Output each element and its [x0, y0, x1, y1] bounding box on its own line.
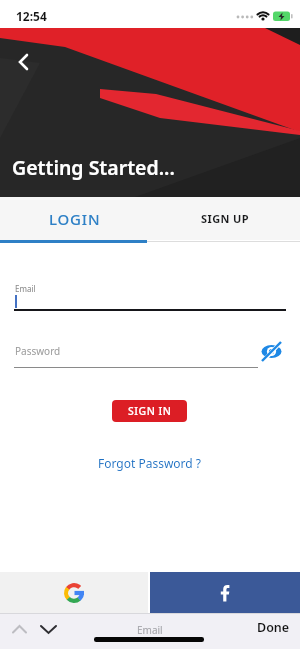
- staticText: SIGN UP: [201, 211, 250, 226]
- staticText: Getting Started...: [12, 154, 175, 181]
- staticText: 12:54: [16, 8, 47, 24]
- button[interactable]: SIGN IN: [112, 400, 187, 422]
- staticText: Forgot Password ?: [98, 455, 202, 471]
- button[interactable]: [256, 336, 286, 366]
- button[interactable]: LOGIN: [0, 197, 150, 240]
- button[interactable]: [34, 617, 62, 641]
- button[interactable]: [8, 46, 40, 78]
- button[interactable]: Done: [257, 615, 290, 639]
- button[interactable]: SIGN UP: [150, 197, 300, 240]
- staticText: SIGN IN: [128, 404, 172, 418]
- button[interactable]: [150, 572, 300, 613]
- staticText: Done: [257, 619, 290, 636]
- staticText: Password: [15, 344, 61, 358]
- button[interactable]: [14, 293, 286, 311]
- staticText: Email: [137, 623, 163, 637]
- staticText: Email: [15, 283, 36, 294]
- button[interactable]: [0, 572, 148, 613]
- staticText: LOGIN: [49, 209, 101, 229]
- button[interactable]: Forgot Password ?: [0, 453, 300, 473]
- button[interactable]: Password: [14, 338, 258, 367]
- button[interactable]: [6, 617, 32, 641]
